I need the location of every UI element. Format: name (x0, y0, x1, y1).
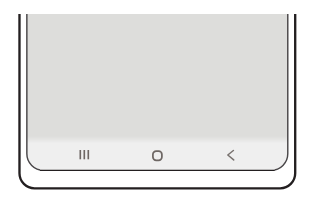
button[interactable]: Recent apps (27, 142, 113, 170)
button[interactable]: Home (113, 142, 198, 170)
button[interactable]: Back (198, 142, 283, 170)
